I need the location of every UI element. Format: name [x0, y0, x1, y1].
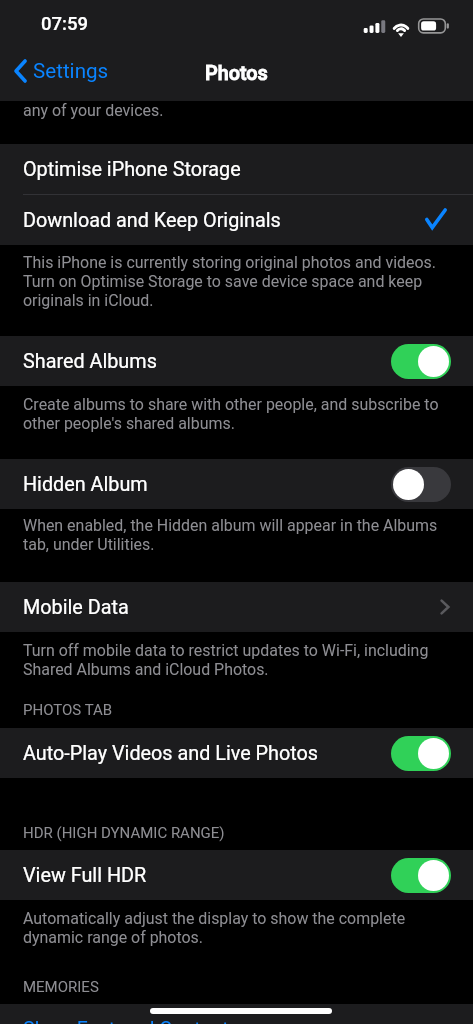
staticText: Create albums to share with other people…: [23, 395, 445, 433]
button[interactable]: Toggle on: [391, 736, 451, 771]
staticText: Hidden Album: [23, 473, 148, 496]
button[interactable]: View Full HDR: [0, 850, 473, 900]
staticText: MEMORIES: [23, 978, 99, 996]
staticText: Shared Albums: [23, 350, 157, 373]
staticText: Photos: [205, 62, 268, 85]
staticText: Auto-Play Videos and Live Photos: [23, 742, 319, 765]
button[interactable]: Mobile Data: [0, 582, 473, 632]
staticText: 07:59: [41, 13, 88, 35]
staticText: Automatically adjust the display to show…: [23, 909, 445, 947]
staticText: Turn off mobile data to restrict updates…: [23, 641, 445, 679]
button[interactable]: Toggle on: [391, 344, 451, 379]
button[interactable]: Toggle off: [391, 467, 451, 502]
staticText: Settings: [33, 59, 109, 83]
staticText: Optimise iPhone Storage: [23, 158, 241, 181]
staticText: When enabled, the Hidden album will appe…: [23, 516, 445, 554]
staticText: Mobile Data: [23, 596, 129, 619]
staticText: Show Featured Content: [23, 1018, 229, 1024]
button[interactable]: Hidden Album: [0, 459, 473, 509]
staticText: This iPhone is currently storing origina…: [23, 253, 445, 310]
staticText: View Full HDR: [23, 864, 147, 887]
button[interactable]: Download and Keep Originals: [0, 195, 473, 245]
staticText: Download and Keep Originals: [23, 209, 281, 232]
button[interactable]: Settings: [10, 57, 117, 85]
button[interactable]: Auto-Play Videos and Live Photos: [0, 728, 473, 778]
button[interactable]: Optimise iPhone Storage: [0, 144, 473, 194]
button[interactable]: Shared Albums: [0, 336, 473, 386]
staticText: any of your devices.: [23, 101, 164, 120]
staticText: HDR (HIGH DYNAMIC RANGE): [23, 824, 225, 842]
staticText: PHOTOS TAB: [23, 701, 113, 719]
button[interactable]: Toggle on: [391, 858, 451, 893]
